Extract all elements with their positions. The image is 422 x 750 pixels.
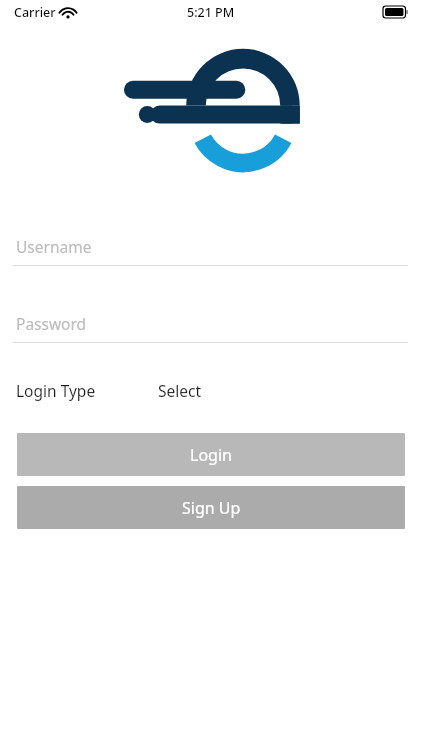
staticText: 5:21 PM: [187, 4, 235, 21]
staticText: Carrier: [14, 4, 56, 21]
staticText: Login Type: [16, 380, 96, 401]
staticText: Password: [16, 313, 87, 334]
staticText: Login: [190, 444, 232, 466]
button[interactable]: Select: [152, 376, 208, 405]
staticText: Select: [158, 380, 202, 401]
button[interactable]: Username: [0, 228, 422, 266]
staticText: Sign Up: [182, 497, 241, 519]
button[interactable]: Password: [0, 305, 422, 343]
button[interactable]: Login: [17, 433, 405, 476]
button[interactable]: Sign Up: [17, 486, 405, 529]
staticText: Username: [16, 236, 92, 257]
